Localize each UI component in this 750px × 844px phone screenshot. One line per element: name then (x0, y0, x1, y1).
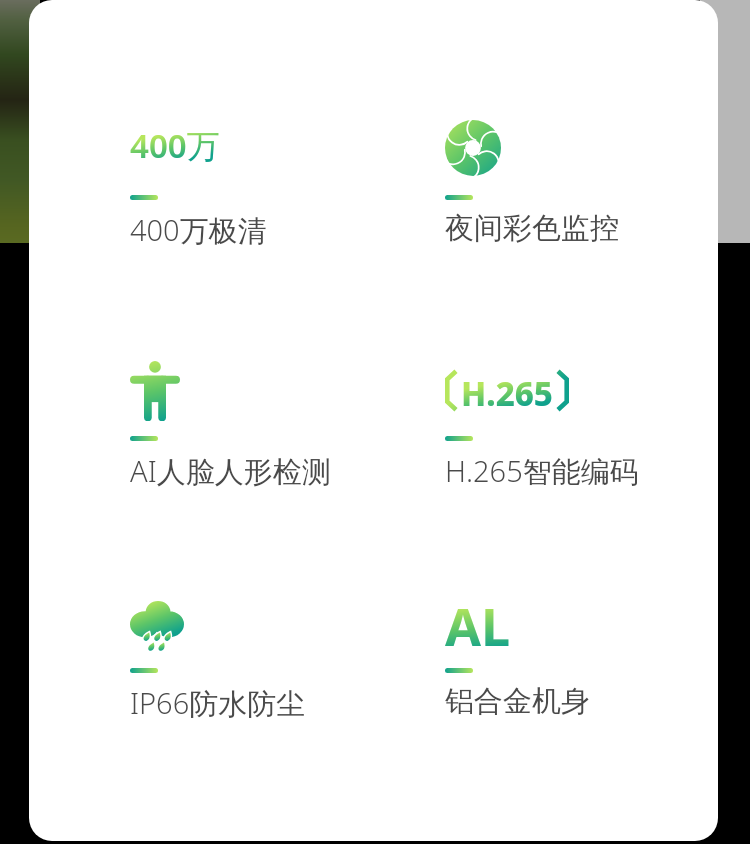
button[interactable]: 400万 (130, 123, 430, 250)
staticText: 夜间彩色监控 (445, 210, 619, 247)
other: AI face and body detection (130, 361, 180, 421)
button[interactable]: AI face and body detection (130, 361, 430, 491)
button[interactable]: IP66 waterproof and dustproof (130, 601, 430, 723)
staticText: 铝合金机身 (445, 683, 590, 720)
button[interactable]: H.265 (445, 369, 718, 491)
button[interactable]: AL (445, 590, 718, 723)
staticText: AI人脸人形检测 (130, 451, 331, 491)
staticText: H.265 (461, 371, 553, 414)
staticText: IP66防水防尘 (130, 683, 306, 723)
other: Night colour monitoring (445, 120, 501, 176)
staticText: H.265智能编码 (445, 451, 639, 491)
button[interactable]: Night colour monitoring (445, 120, 718, 250)
other: IP66 waterproof and dustproof (130, 601, 184, 650)
staticText: 400万 (130, 123, 220, 168)
staticText: 400万极清 (130, 210, 267, 250)
staticText: AL (445, 590, 511, 661)
